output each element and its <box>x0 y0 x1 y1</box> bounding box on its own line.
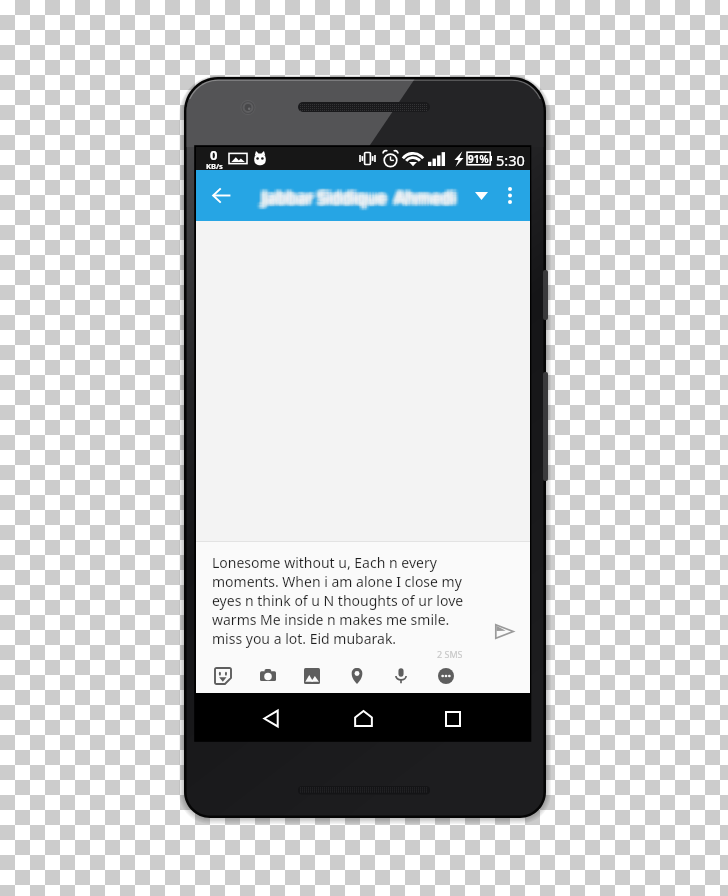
staticText: Jabbar Siddique Ahmedi <box>262 184 456 206</box>
staticText: Jabbar Siddique Ahmedi <box>264 188 458 210</box>
staticText: Jabbar Siddique Ahmedi <box>262 183 456 205</box>
button[interactable]: More <box>423 660 468 692</box>
staticText: Jabbar Siddique Ahmedi <box>259 187 453 209</box>
staticText: Jabbar Siddique Ahmedi <box>258 183 452 205</box>
staticText: Jabbar Siddique Ahmedi <box>260 184 454 206</box>
staticText: Jabbar Siddique Ahmedi <box>263 182 457 204</box>
staticText: Jabbar Siddique Ahmedi <box>262 183 456 205</box>
staticText: Jabbar Siddique Ahmedi <box>261 185 455 207</box>
staticText: Jabbar Siddique Ahmedi <box>258 182 452 204</box>
staticText: Jabbar Siddique Ahmedi <box>262 186 456 208</box>
staticText: Jabbar Siddique Ahmedi <box>264 188 458 210</box>
staticText: Jabbar Siddique Ahmedi <box>260 188 454 210</box>
staticText: Jabbar Siddique Ahmedi <box>258 184 452 206</box>
staticText: Jabbar Siddique Ahmedi <box>264 186 458 208</box>
staticText: Jabbar Siddique Ahmedi <box>260 186 454 208</box>
button[interactable]: Send <box>484 616 524 646</box>
staticText: Jabbar Siddique Ahmedi <box>259 182 453 204</box>
staticText: Jabbar Siddique Ahmedi <box>267 187 461 209</box>
staticText: Jabbar Siddique Ahmedi <box>266 186 460 208</box>
button[interactable]: Jabbar Siddique Ahmedi <box>247 170 462 221</box>
staticText: Jabbar Siddique Ahmedi <box>264 183 458 205</box>
staticText: Jabbar Siddique Ahmedi <box>261 187 455 209</box>
staticText: Jabbar Siddique Ahmedi <box>261 186 455 208</box>
staticText: Jabbar Siddique Ahmedi <box>267 188 461 210</box>
button[interactable]: Sticker <box>200 660 245 692</box>
staticText: Jabbar Siddique Ahmedi <box>261 184 455 206</box>
staticText: Jabbar Siddique Ahmedi <box>261 185 455 207</box>
staticText: Jabbar Siddique Ahmedi <box>258 189 452 211</box>
staticText: Jabbar Siddique Ahmedi <box>265 184 459 206</box>
staticText: 91% <box>468 152 489 166</box>
staticText: Jabbar Siddique Ahmedi <box>264 186 458 208</box>
staticText: Jabbar Siddique Ahmedi <box>261 188 455 210</box>
button[interactable]: More options <box>494 170 525 221</box>
staticText: Jabbar Siddique Ahmedi <box>261 183 455 205</box>
staticText: Jabbar Siddique Ahmedi <box>262 188 456 210</box>
staticText: Jabbar Siddique Ahmedi <box>264 188 458 210</box>
staticText: Jabbar Siddique Ahmedi <box>265 185 459 207</box>
staticText: Jabbar Siddique Ahmedi <box>264 187 458 209</box>
staticText: Jabbar Siddique Ahmedi <box>264 187 458 209</box>
staticText: Jabbar Siddique Ahmedi <box>259 188 453 210</box>
staticText: Jabbar Siddique Ahmedi <box>267 186 461 208</box>
staticText: Jabbar Siddique Ahmedi <box>264 183 458 205</box>
staticText: Jabbar Siddique Ahmedi <box>259 184 453 206</box>
staticText: Jabbar Siddique Ahmedi <box>266 182 460 204</box>
staticText: Jabbar Siddique Ahmedi <box>265 183 459 205</box>
button[interactable]: Gallery <box>289 660 334 692</box>
staticText: Jabbar Siddique Ahmedi <box>259 186 453 208</box>
staticText: Jabbar Siddique Ahmedi <box>265 187 459 209</box>
staticText: Jabbar Siddique Ahmedi <box>264 184 458 206</box>
staticText: Jabbar Siddique Ahmedi <box>266 183 460 205</box>
staticText: Jabbar Siddique Ahmedi <box>258 183 452 205</box>
button[interactable]: Voice message <box>378 660 423 692</box>
button[interactable]: Recent apps <box>429 697 477 740</box>
staticText: Jabbar Siddique Ahmedi <box>266 186 460 208</box>
staticText: Jabbar Siddique Ahmedi <box>267 186 461 208</box>
staticText: Jabbar Siddique Ahmedi <box>258 185 452 207</box>
staticText: Jabbar Siddique Ahmedi <box>262 186 456 208</box>
button[interactable]: Expand recipients <box>464 170 498 221</box>
staticText: Jabbar Siddique Ahmedi <box>264 183 458 205</box>
button[interactable]: Navigate up <box>196 170 247 221</box>
staticText: Jabbar Siddique Ahmedi <box>261 183 455 205</box>
staticText: Jabbar Siddique Ahmedi <box>267 183 461 205</box>
staticText: Jabbar Siddique Ahmedi <box>258 186 452 208</box>
button[interactable]: Location <box>334 660 379 692</box>
button[interactable]: Camera <box>245 660 290 692</box>
staticText: Jabbar Siddique Ahmedi <box>263 188 457 210</box>
staticText: Lonesome without u, Each n every moments… <box>212 553 470 648</box>
staticText: Jabbar Siddique Ahmedi <box>263 183 457 205</box>
staticText: Jabbar Siddique Ahmedi <box>261 183 455 205</box>
staticText: Jabbar Siddique Ahmedi <box>260 183 454 205</box>
staticText: Jabbar Siddique Ahmedi <box>263 186 457 208</box>
staticText: Jabbar Siddique Ahmedi <box>258 186 452 208</box>
staticText: Jabbar Siddique Ahmedi <box>264 186 458 208</box>
staticText: Jabbar Siddique Ahmedi <box>266 188 460 210</box>
staticText: Jabbar Siddique Ahmedi <box>264 189 458 211</box>
staticText: Jabbar Siddique Ahmedi <box>261 186 455 208</box>
staticText: Jabbar Siddique Ahmedi <box>265 186 459 208</box>
staticText: Jabbar Siddique Ahmedi <box>262 182 456 204</box>
staticText: Jabbar Siddique Ahmedi <box>263 188 457 210</box>
staticText: Jabbar Siddique Ahmedi <box>265 186 459 208</box>
staticText: Jabbar Siddique Ahmedi <box>258 187 452 209</box>
staticText: Jabbar Siddique Ahmedi <box>261 184 455 206</box>
staticText: Jabbar Siddique Ahmedi <box>260 182 454 204</box>
button[interactable]: Back <box>247 697 295 740</box>
staticText: Jabbar Siddique Ahmedi <box>264 189 458 211</box>
staticText: Jabbar Siddique Ahmedi <box>260 185 454 207</box>
staticText: Jabbar Siddique Ahmedi <box>265 182 459 204</box>
staticText: Jabbar Siddique Ahmedi <box>263 189 457 211</box>
staticText: Jabbar Siddique Ahmedi <box>259 188 453 210</box>
staticText: Jabbar Siddique Ahmedi <box>259 183 453 205</box>
staticText: Jabbar Siddique Ahmedi <box>258 188 452 210</box>
staticText: Jabbar Siddique Ahmedi <box>261 189 455 211</box>
button[interactable]: Home <box>339 697 387 740</box>
staticText: Jabbar Siddique Ahmedi <box>260 187 454 209</box>
staticText: Jabbar Siddique Ahmedi <box>260 186 454 208</box>
staticText: Jabbar Siddique Ahmedi <box>264 188 458 210</box>
staticText: Jabbar Siddique Ahmedi <box>262 187 456 209</box>
staticText: Jabbar Siddique Ahmedi <box>258 188 452 210</box>
